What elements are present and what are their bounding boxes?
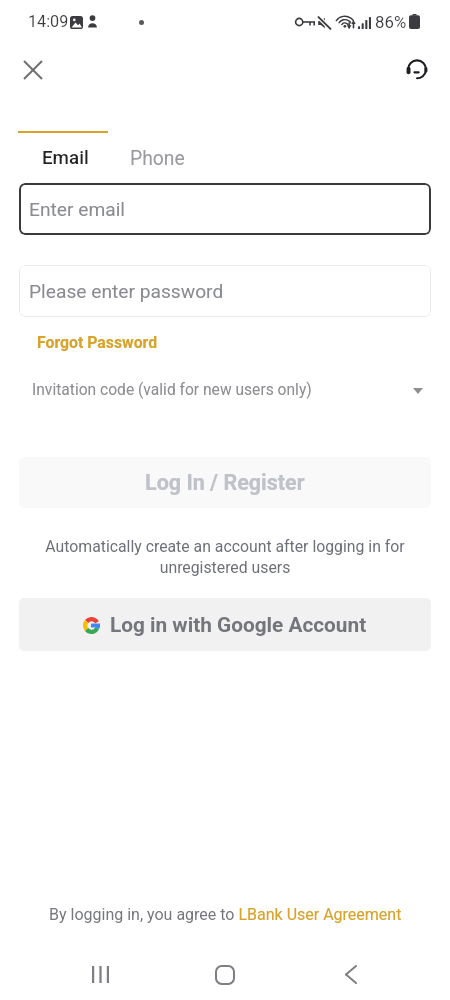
button[interactable]: Phone [110, 146, 204, 170]
staticText: 86% [375, 12, 407, 32]
staticText: Email [42, 147, 89, 169]
staticText: Forgot Password [37, 333, 158, 352]
button[interactable]: Enter email [19, 183, 431, 235]
button[interactable]: By logging in, you agree to LBank User A… [46, 902, 405, 927]
staticText: Enter email [29, 198, 125, 221]
button[interactable]: Log In / Register [19, 457, 431, 508]
staticText: Please enter password [29, 280, 224, 303]
button[interactable]: Close [11, 48, 55, 92]
staticText: Invitation code (valid for new users onl… [32, 381, 312, 399]
button[interactable]: Recent apps [76, 951, 124, 1000]
button[interactable]: Back [327, 951, 375, 1000]
staticText: Log In / Register [145, 470, 305, 495]
button[interactable]: Please enter password [19, 265, 431, 317]
button[interactable]: Log in with Google Account [19, 598, 431, 651]
button[interactable]: Invitation code (valid for new users onl… [19, 370, 431, 404]
button[interactable]: Forgot Password [37, 333, 158, 352]
button[interactable]: Home [201, 951, 249, 1000]
button[interactable]: Email [20, 146, 110, 170]
button[interactable]: Customer support [395, 48, 439, 92]
staticText: By logging in, you agree to LBank User A… [49, 905, 402, 924]
staticText: 14:09 [28, 12, 69, 31]
staticText: Automatically create an account after lo… [37, 537, 413, 577]
staticText: Phone [130, 147, 185, 170]
staticText: Log in with Google Account [110, 613, 367, 637]
